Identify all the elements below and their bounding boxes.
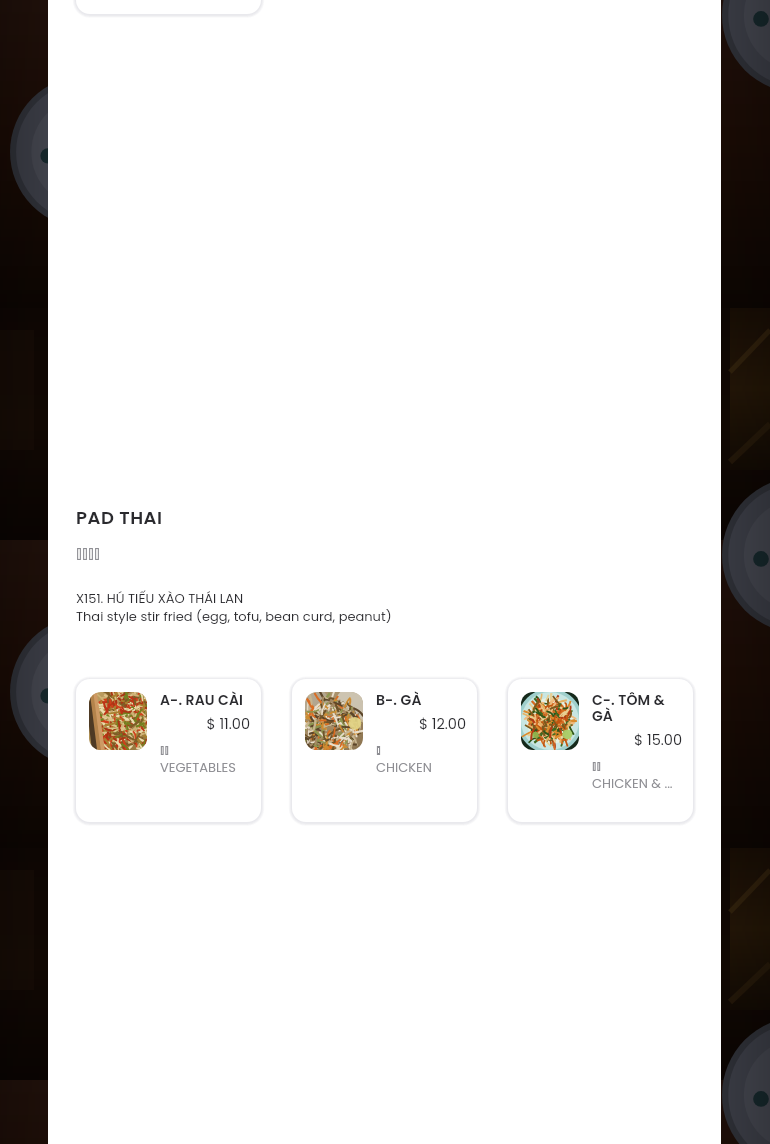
button[interactable]: C-. TÔM & GÀ	[508, 679, 693, 822]
staticText: CHICKEN & ...	[592, 774, 673, 792]
staticText: PAD THAI	[76, 505, 163, 530]
staticText: $ 11.00	[160, 714, 250, 734]
staticText: A-. RAU CÀI	[160, 690, 244, 710]
staticText: X151. HÚ TIẾU XÀO THÁI LAN	[76, 589, 244, 607]
staticText: $ 15.00	[592, 730, 682, 750]
staticText: B-. GÀ	[376, 690, 422, 710]
staticText: CHICKEN	[376, 758, 432, 776]
button[interactable]: B-. GÀ	[292, 679, 477, 822]
staticText: Thai style stir fried (egg, tofu, bean c…	[76, 607, 392, 625]
button[interactable]: A-. RAU CÀI	[76, 679, 261, 822]
staticText: C-. TÔM & GÀ	[592, 690, 682, 726]
staticText: $ 12.00	[376, 714, 466, 734]
staticText: VEGETABLES	[160, 758, 236, 776]
